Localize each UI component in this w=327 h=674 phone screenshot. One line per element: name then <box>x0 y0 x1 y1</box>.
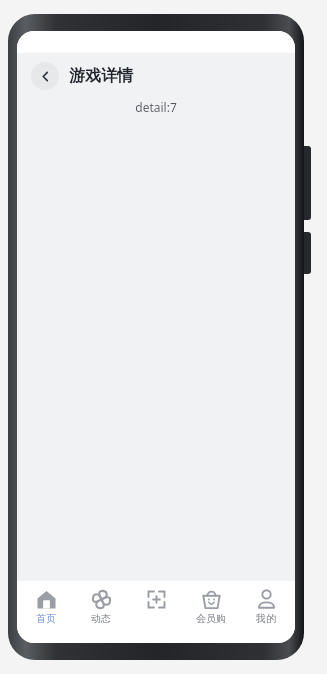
button[interactable]: Home <box>20 581 72 643</box>
button[interactable]: Shop <box>185 581 237 643</box>
button[interactable]: Moments <box>75 581 127 643</box>
button[interactable]: Scan <box>130 581 182 643</box>
staticText: 游戏详情 <box>69 66 133 86</box>
staticText: 首页 <box>36 612 56 625</box>
button[interactable]: Profile <box>240 581 292 643</box>
staticText: 动态 <box>91 612 111 625</box>
staticText: detail:7 <box>17 99 295 115</box>
staticText: 我的 <box>256 612 276 625</box>
staticText: 会员购 <box>196 612 226 625</box>
button[interactable]: Back <box>31 62 59 90</box>
